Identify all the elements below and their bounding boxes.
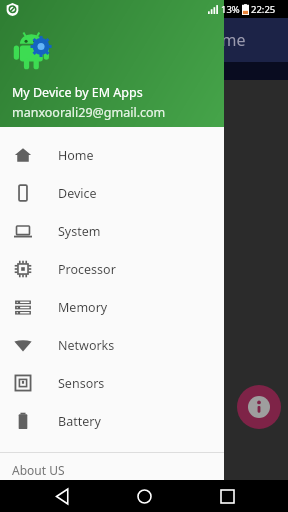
staticText: manxoorali29@gmail.com	[12, 104, 166, 121]
button[interactable]: System	[0, 212, 224, 250]
button[interactable]: Device	[0, 174, 224, 212]
staticText: About US	[12, 462, 65, 478]
button[interactable]: Memory	[0, 288, 224, 326]
staticText: Processor	[58, 261, 116, 278]
staticText: Networks	[58, 337, 115, 354]
staticText: 22:25	[251, 3, 276, 16]
button[interactable]: Home	[0, 136, 224, 174]
button[interactable]: About US	[0, 453, 224, 486]
staticText: Home	[200, 29, 246, 51]
staticText: Device	[58, 185, 97, 202]
staticText: Sensors	[58, 375, 105, 392]
staticText: Memory	[58, 299, 108, 316]
button[interactable]: Processor	[0, 250, 224, 288]
button[interactable]: Battery	[0, 402, 224, 440]
button[interactable]: Networks	[0, 326, 224, 364]
staticText: Battery	[58, 413, 101, 430]
staticText: My Device by EM Apps	[12, 84, 143, 101]
staticText: Home	[58, 147, 94, 164]
button[interactable]: Sensors	[0, 364, 224, 402]
button[interactable]: Back	[41, 480, 83, 512]
button[interactable]: Recent apps	[206, 480, 248, 512]
button[interactable]: Information	[237, 385, 281, 429]
button[interactable]: Home	[123, 480, 165, 512]
staticText: 13%	[221, 3, 240, 16]
staticText: System	[58, 223, 101, 240]
